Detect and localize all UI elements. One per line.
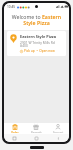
- button[interactable]: Account: [47, 123, 69, 134]
- button[interactable]: Eastern Style Pizza: [7, 31, 66, 56]
- staticText: Welcome to Eastern Style Pizza: [9, 13, 64, 27]
- button[interactable]: Recent apps: [4, 134, 25, 142]
- staticText: Eastern Style Pizza: [20, 34, 57, 39]
- button[interactable]: Home: [25, 134, 47, 142]
- staticText: 10:45: [7, 5, 16, 9]
- staticText: 2901 W Trinity Mills Rd #400: [20, 40, 63, 48]
- staticText: Rewards: [31, 131, 42, 133]
- button[interactable]: Rewards: [25, 123, 47, 134]
- staticText: Pick up • Open now: [24, 49, 55, 53]
- button[interactable]: Back: [47, 134, 69, 142]
- staticText: Order: [11, 131, 19, 133]
- staticText: Account: [53, 131, 64, 133]
- button[interactable]: Order: [4, 123, 25, 134]
